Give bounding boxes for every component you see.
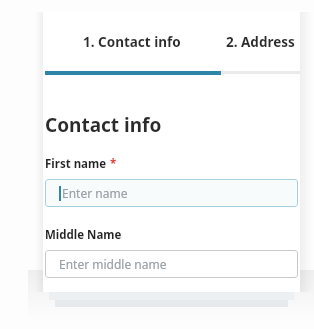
staticText: Enter middle name bbox=[59, 256, 167, 272]
button[interactable]: 2. Address bbox=[221, 12, 300, 71]
button[interactable]: Enter name bbox=[45, 179, 298, 207]
button[interactable]: Enter middle name bbox=[45, 250, 298, 278]
button[interactable]: 1. Contact info bbox=[43, 12, 221, 71]
staticText: Middle Name bbox=[45, 227, 122, 243]
staticText: * bbox=[110, 156, 117, 172]
staticText: First name bbox=[45, 156, 107, 172]
staticText: Enter name bbox=[62, 185, 128, 201]
staticText: Contact info bbox=[45, 112, 162, 138]
staticText: 1. Contact info bbox=[83, 33, 181, 51]
staticText: 2. Address bbox=[226, 33, 295, 51]
